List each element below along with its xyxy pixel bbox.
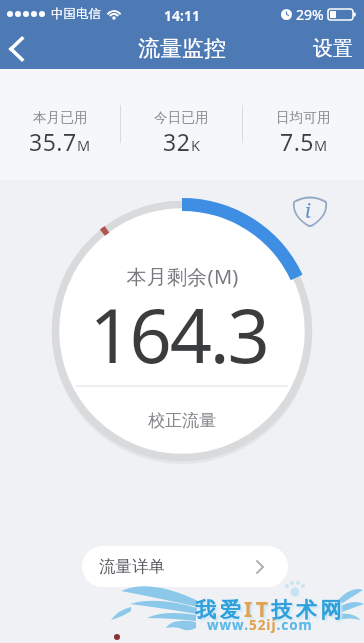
staticText: 今日已用	[154, 109, 209, 126]
button[interactable]: 设置	[313, 36, 364, 61]
staticText: 中国电信	[51, 6, 101, 22]
staticText: 我爱IT技术网	[195, 595, 345, 624]
staticText: 29%	[296, 5, 324, 24]
staticText: 32	[163, 126, 191, 157]
staticText: 流量监控	[138, 35, 226, 63]
staticText: M	[314, 135, 328, 155]
staticText: 164.3	[89, 284, 268, 385]
staticText: 设置	[313, 36, 353, 61]
staticText: 本月已用	[33, 109, 88, 126]
staticText: K	[191, 135, 200, 155]
button[interactable]: 本月已用	[0, 69, 120, 180]
staticText: i	[305, 198, 311, 224]
staticText: M	[77, 135, 91, 155]
button[interactable]: 今日已用	[121, 69, 242, 180]
staticText: 35.7	[29, 126, 77, 157]
button[interactable]: 日均可用	[243, 69, 364, 180]
staticText: 校正流量	[148, 410, 216, 431]
staticText: 日均可用	[276, 109, 331, 126]
staticText: 7.5	[280, 126, 314, 157]
staticText: 14:11	[164, 6, 200, 25]
button[interactable]: 校正流量	[128, 404, 236, 437]
staticText: 本月剩余(M)	[126, 263, 239, 290]
button[interactable]	[0, 33, 24, 65]
staticText: 流量详单	[99, 556, 165, 577]
staticText: www.52ij.com	[207, 616, 313, 634]
button[interactable]: 流量详单	[82, 546, 288, 587]
